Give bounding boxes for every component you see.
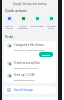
button[interactable]: Free up 1.2 GB bbox=[4, 71, 56, 83]
staticText: Trash items will be bbox=[14, 61, 41, 65]
button[interactable]: Share backups bbox=[16, 15, 30, 30]
button[interactable]: Free up space bbox=[2, 15, 16, 30]
staticText: Categories file shows bbox=[14, 43, 44, 47]
staticText: Google Storage and backup bbox=[13, 2, 47, 6]
staticText: deleted after 30 days bbox=[14, 66, 38, 69]
staticText: Review bbox=[42, 53, 50, 56]
staticText: Manage plan bbox=[44, 24, 58, 30]
button[interactable]: Get storage bbox=[30, 15, 44, 27]
button[interactable]: Manage plan bbox=[44, 15, 58, 30]
staticText: See all storage bbox=[14, 88, 34, 92]
staticText: Free up space bbox=[2, 24, 16, 30]
staticText: Share backups bbox=[16, 24, 30, 30]
staticText: Get storage bbox=[30, 24, 44, 27]
staticText: Free up 1.2 GB bbox=[14, 73, 35, 77]
button[interactable]: Categories file shows bbox=[4, 41, 56, 59]
button[interactable]: See all storage bbox=[4, 86, 56, 94]
button[interactable]: Review bbox=[39, 52, 53, 57]
staticText: Quick actions bbox=[5, 8, 27, 13]
staticText: you what's taking up space bbox=[14, 48, 45, 51]
button[interactable]: Trash items will be bbox=[4, 59, 56, 71]
staticText: To do bbox=[5, 35, 14, 39]
staticText: Review large items bbox=[14, 78, 35, 81]
